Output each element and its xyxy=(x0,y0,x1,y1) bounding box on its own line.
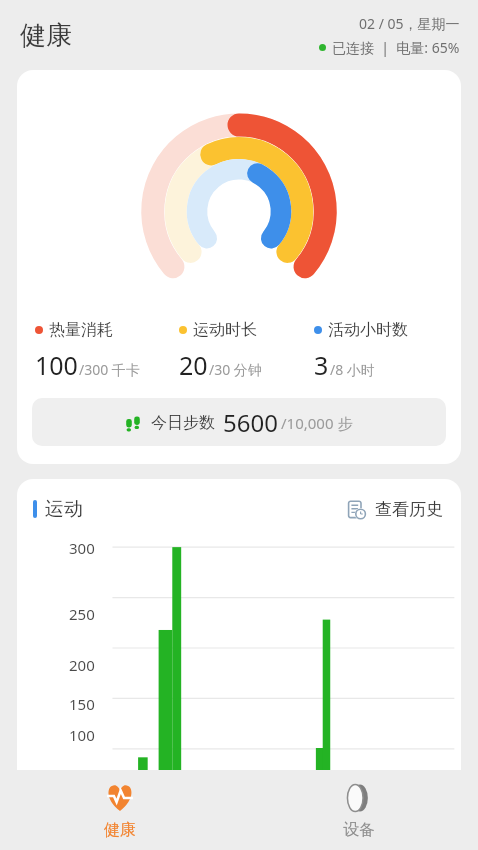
other: View history xyxy=(347,500,367,520)
button[interactable]: View history xyxy=(347,499,443,520)
staticText: 150 xyxy=(69,694,95,714)
staticText: 300 xyxy=(69,538,95,558)
staticText: 02 / 05，星期一 xyxy=(359,14,460,33)
staticText: 查看历史 xyxy=(375,499,443,520)
staticText: 200 xyxy=(69,655,95,675)
staticText: 运动时长 xyxy=(193,320,257,340)
button[interactable]: 今日步数 xyxy=(32,398,446,446)
staticText: 250 xyxy=(69,604,95,624)
staticText: /30 分钟 xyxy=(209,360,262,379)
staticText: 已连接 | 电量: 65% xyxy=(332,38,460,57)
staticText: 3 xyxy=(314,348,329,382)
other: 健康 xyxy=(103,781,137,815)
staticText: 设备 xyxy=(343,820,375,840)
staticText: 热量消耗 xyxy=(49,320,113,340)
staticText: 今日步数 xyxy=(151,413,215,433)
button[interactable]: 设备 xyxy=(239,770,478,850)
staticText: 健康 xyxy=(20,19,72,52)
button[interactable]: 健康 xyxy=(0,770,239,850)
staticText: 100 xyxy=(69,725,95,745)
staticText: 活动小时数 xyxy=(328,320,408,340)
staticText: 5600 xyxy=(223,406,278,439)
staticText: 运动 xyxy=(45,497,83,521)
staticText: 20 xyxy=(179,348,208,382)
staticText: 100 xyxy=(35,348,78,382)
staticText: /10,000 步 xyxy=(281,413,353,433)
staticText: 健康 xyxy=(104,820,136,840)
other: 设备 xyxy=(342,781,376,815)
staticText: /300 千卡 xyxy=(79,360,140,379)
staticText: /8 小时 xyxy=(330,360,375,379)
